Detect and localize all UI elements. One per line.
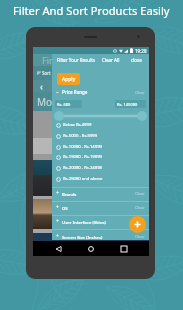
staticText: Rs. 140080 <box>117 102 138 107</box>
staticText: Sort <box>42 70 51 76</box>
staticText: Clear <box>135 205 145 210</box>
staticText: ‹ <box>40 80 43 92</box>
staticText: Rs. 680 <box>57 102 71 107</box>
staticText: Clear All <box>102 57 120 63</box>
button[interactable]: – <box>56 87 145 97</box>
button[interactable]: Rs.5000 - Rs.9999 <box>56 131 149 141</box>
staticText: + <box>56 218 59 225</box>
button[interactable]: Rs.25080 and above <box>56 174 149 184</box>
staticText: Below Rs.4999 <box>63 122 92 128</box>
button[interactable]: Clear All <box>102 57 120 63</box>
staticText: close <box>131 57 142 63</box>
button[interactable]: Rs.20080 - Rs.24898 <box>56 163 149 173</box>
button[interactable]: Below Rs.4999 <box>56 120 149 130</box>
button[interactable]: + <box>56 230 145 243</box>
staticText: – <box>56 89 59 96</box>
staticText: Apply <box>62 76 76 83</box>
staticText: Clear <box>135 219 145 224</box>
staticText: Rs.15080 - Rs.19899 <box>63 154 102 160</box>
staticText: + <box>56 204 59 211</box>
button[interactable]: Apply <box>57 73 80 85</box>
staticText: Clear <box>135 191 145 196</box>
button[interactable]: + <box>56 187 145 200</box>
staticText: + <box>56 233 59 240</box>
staticText: Find <box>42 54 61 66</box>
staticText: Rs.5000 - Rs.9999 <box>63 133 98 139</box>
staticText: Filter Your Results <box>57 57 95 63</box>
staticText: User Interface (Skins) <box>62 219 106 225</box>
staticText: Mob <box>37 95 59 109</box>
button[interactable]: Rs.10080 - Rs.14999 <box>56 142 149 152</box>
staticText: Screen Size (Inches) <box>62 234 103 240</box>
staticText: Filter And Sort Products Easily <box>13 3 170 18</box>
button[interactable]: Recent apps <box>117 242 131 256</box>
staticText: + <box>56 190 59 197</box>
staticText: Brands <box>62 191 77 197</box>
staticText: 19:28 <box>135 48 147 54</box>
button[interactable]: + <box>56 201 145 214</box>
staticText: Rs.20080 - Rs.24898 <box>63 165 102 171</box>
button[interactable]: Filter Your Results <box>57 57 95 63</box>
button[interactable]: Home <box>84 242 98 256</box>
staticText: Clear <box>135 90 145 95</box>
button[interactable]: Rs.15080 - Rs.19899 <box>56 152 149 162</box>
button[interactable]: Add filter <box>129 216 146 233</box>
button[interactable]: Back <box>52 242 66 256</box>
button[interactable]: close <box>131 57 142 63</box>
staticText: Rs.10080 - Rs.14999 <box>63 144 102 150</box>
button[interactable]: + <box>56 215 145 228</box>
staticText: Rs.25080 and above <box>63 176 103 182</box>
staticText: OS <box>62 205 68 211</box>
staticText: Clear <box>135 234 145 239</box>
staticText: Price Range <box>62 89 88 95</box>
